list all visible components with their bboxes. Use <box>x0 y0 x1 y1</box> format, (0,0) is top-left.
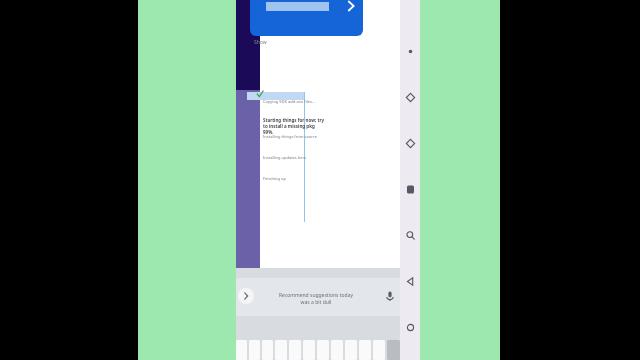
staticText: Starting things for now; try to install … <box>263 117 325 135</box>
staticText: Installing updates here <box>263 155 325 160</box>
button[interactable]: Pointer <box>400 42 420 60</box>
staticText: Copying SDK add-ons files... <box>263 99 325 104</box>
staticText: Show <box>254 39 267 46</box>
button[interactable]: Home <box>400 318 420 336</box>
button[interactable]: Next <box>343 0 359 14</box>
button[interactable]: Next <box>250 0 363 36</box>
button[interactable]: Voice input <box>382 288 398 304</box>
button[interactable]: Zoom in <box>400 134 420 152</box>
button[interactable]: More suggestions <box>238 288 254 304</box>
button[interactable]: Recommend suggestions today was a bit du… <box>276 292 356 306</box>
button[interactable]: Zoom out <box>400 88 420 106</box>
staticText: Installing things from source <box>263 134 325 139</box>
button[interactable]: Search <box>400 226 420 244</box>
staticText: Finishing up <box>263 176 325 181</box>
button[interactable]: Camera <box>400 180 420 198</box>
button[interactable]: Back <box>400 272 420 290</box>
